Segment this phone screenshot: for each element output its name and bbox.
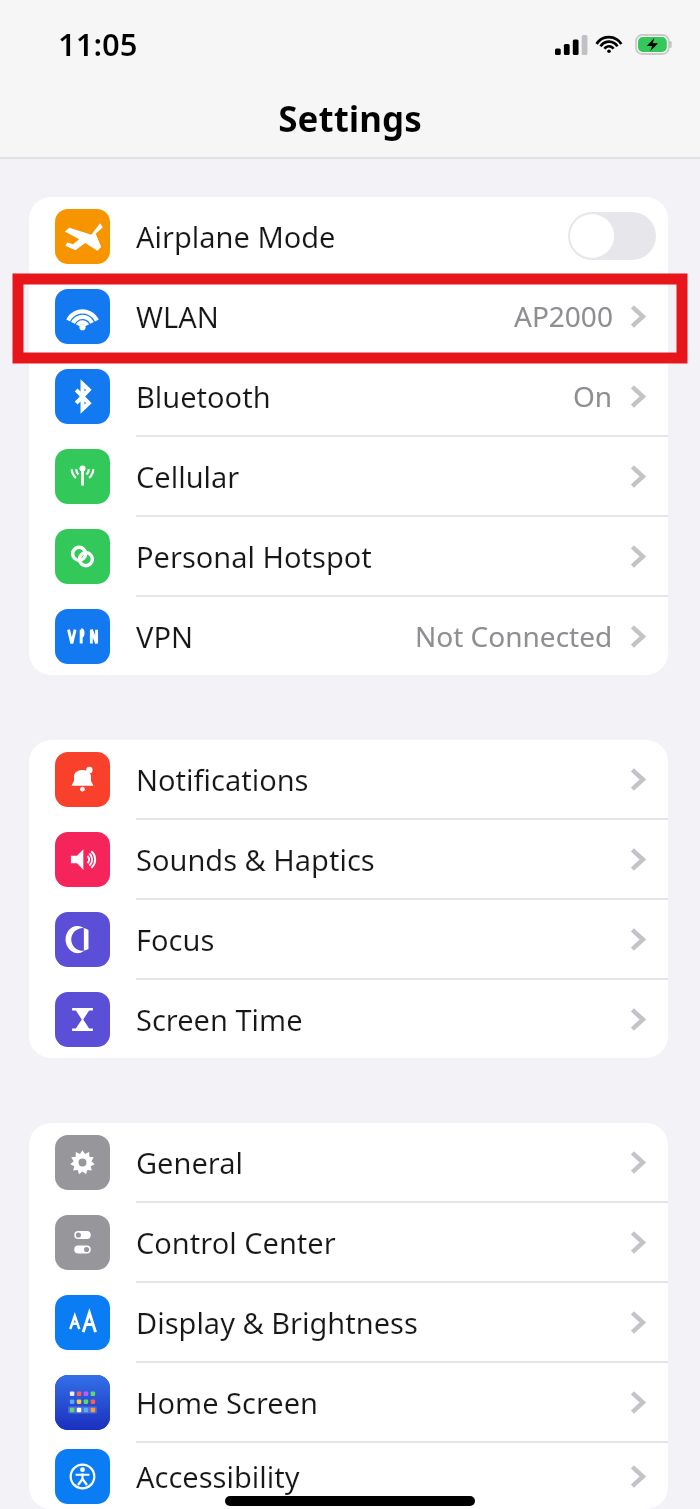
staticText: Accessibility [136,1457,300,1496]
button[interactable]: Focus [29,900,668,978]
staticText: Settings [278,95,422,143]
button[interactable]: Accessibility [29,1443,668,1509]
staticText: Personal Hotspot [136,537,372,576]
staticText: General [136,1143,243,1182]
staticText: On [573,377,613,415]
button[interactable]: Personal Hotspot [29,517,668,595]
button[interactable]: General [29,1123,668,1201]
staticText: WLAN [136,297,219,336]
button[interactable]: WLAN [29,277,668,355]
staticText: Airplane Mode [136,217,336,256]
staticText: Display & Brightness [136,1303,418,1342]
staticText: Not Connected [415,617,613,655]
staticText: 11:05 [58,23,138,65]
button[interactable]: Control Center [29,1203,668,1281]
button[interactable]: Display & Brightness [29,1283,668,1361]
staticText: Home Screen [136,1383,318,1422]
staticText: Notifications [136,760,309,799]
button[interactable]: Bluetooth [29,357,668,435]
button[interactable]: VPN [29,597,668,675]
staticText: Bluetooth [136,377,271,416]
button[interactable]: Sounds & Haptics [29,820,668,898]
staticText: AP2000 [514,297,613,335]
staticText: Focus [136,920,215,959]
button[interactable]: Cellular [29,437,668,515]
staticText: Sounds & Haptics [136,840,375,879]
staticText: Screen Time [136,1000,303,1039]
staticText: Cellular [136,457,240,496]
staticText: Control Center [136,1223,336,1262]
button[interactable]: Airplane Mode [29,197,668,275]
button[interactable]: Home Screen [29,1363,668,1441]
button[interactable]: Screen Time [29,980,668,1058]
staticText: VPN [136,617,193,656]
button[interactable]: Notifications [29,740,668,818]
button[interactable]: Airplane Mode switch [568,212,656,260]
